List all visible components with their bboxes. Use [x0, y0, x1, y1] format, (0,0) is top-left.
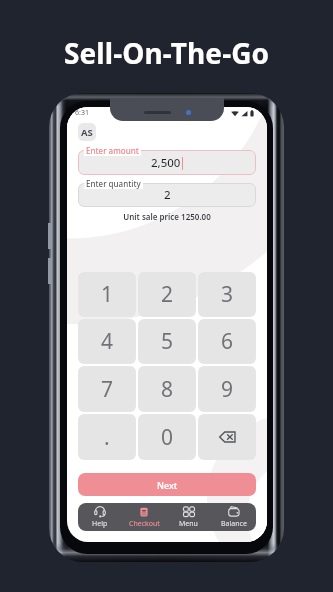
- button[interactable]: 8: [138, 366, 196, 412]
- button[interactable]: Backspace: [198, 414, 256, 460]
- staticText: 1: [101, 280, 114, 309]
- button[interactable]: AS: [78, 123, 96, 141]
- button[interactable]: .: [78, 414, 136, 460]
- button[interactable]: Checkout: [122, 503, 166, 531]
- staticText: Menu: [179, 519, 198, 529]
- staticText: .: [104, 423, 110, 452]
- button[interactable]: 6: [198, 319, 256, 364]
- button[interactable]: Next: [78, 473, 256, 496]
- staticText: Enter quantity: [86, 178, 141, 189]
- other: Backspace: [219, 431, 236, 443]
- staticText: Checkout: [129, 519, 160, 529]
- staticText: Unit sale price 1250.00: [67, 211, 267, 222]
- button[interactable]: 3: [198, 272, 256, 317]
- staticText: Sell-On-The-Go: [64, 34, 270, 72]
- button[interactable]: 2: [138, 272, 196, 317]
- staticText: 2: [161, 280, 174, 309]
- staticText: Enter amount: [86, 145, 139, 156]
- button[interactable]: 4: [78, 319, 136, 364]
- staticText: 9: [221, 375, 234, 404]
- staticText: Balance: [221, 519, 247, 529]
- button[interactable]: Menu: [166, 503, 211, 531]
- staticText: 6: [221, 327, 234, 356]
- button[interactable]: 1: [78, 272, 136, 317]
- staticText: 4: [101, 327, 114, 356]
- button[interactable]: Balance: [211, 503, 256, 531]
- staticText: 8: [161, 375, 174, 404]
- staticText: 5: [161, 327, 174, 356]
- button[interactable]: 2,500: [78, 150, 256, 175]
- staticText: Help: [92, 519, 108, 529]
- staticText: 3: [221, 280, 234, 309]
- button[interactable]: 9: [198, 366, 256, 412]
- staticText: 6:31: [75, 108, 89, 118]
- button[interactable]: 5: [138, 319, 196, 364]
- button[interactable]: 2: [78, 183, 256, 207]
- staticText: 2: [164, 187, 171, 203]
- button[interactable]: 0: [138, 414, 196, 460]
- staticText: 2,500: [151, 155, 181, 171]
- staticText: Next: [157, 479, 178, 491]
- staticText: AS: [81, 126, 93, 139]
- button[interactable]: Help: [78, 503, 122, 531]
- button[interactable]: 7: [78, 366, 136, 412]
- staticText: 0: [161, 423, 174, 452]
- staticText: 7: [101, 375, 114, 404]
